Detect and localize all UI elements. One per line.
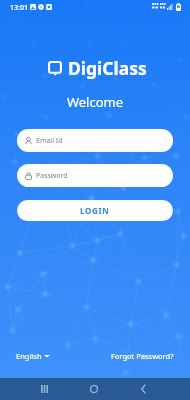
button[interactable]: Forgot Password? bbox=[111, 349, 174, 363]
button[interactable]: Password bbox=[17, 164, 173, 187]
staticText: LOGIN bbox=[80, 205, 110, 216]
button[interactable]: Email Id bbox=[17, 129, 173, 152]
staticText: DigiClass bbox=[68, 56, 147, 80]
button[interactable]: English bbox=[16, 349, 50, 363]
staticText: English bbox=[16, 351, 42, 361]
staticText: Welcome bbox=[0, 93, 190, 111]
button[interactable]: LOGIN bbox=[17, 200, 173, 221]
button[interactable]: Home bbox=[73, 378, 115, 400]
staticText: Password bbox=[36, 171, 68, 181]
button[interactable]: Recent apps bbox=[23, 378, 65, 400]
staticText: 13:01 bbox=[10, 3, 28, 13]
button[interactable]: Back bbox=[122, 378, 164, 400]
staticText: Email Id bbox=[36, 136, 63, 146]
